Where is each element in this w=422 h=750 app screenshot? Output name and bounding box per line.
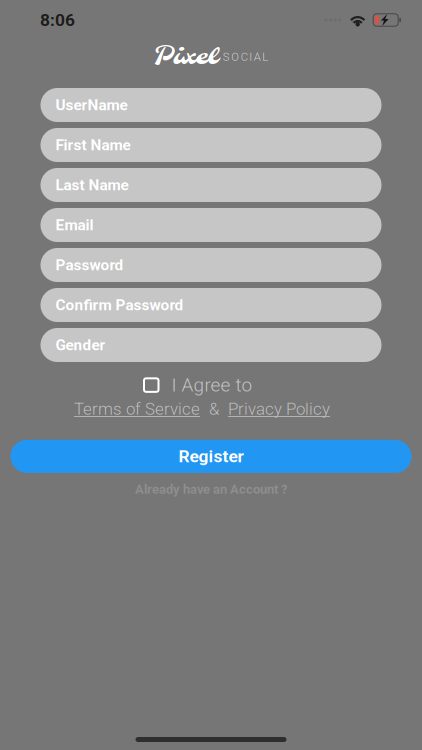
- staticText: Email: [55, 216, 93, 234]
- staticText: 8:06: [40, 10, 75, 30]
- staticText: Pixel: [154, 41, 218, 73]
- staticText: Terms of Service: [74, 399, 200, 419]
- button[interactable]: Already have an Account ?: [135, 482, 287, 497]
- button[interactable]: UserName: [40, 88, 381, 122]
- staticText: &: [209, 399, 219, 419]
- button[interactable]: Last Name: [40, 168, 381, 202]
- staticText: Password: [55, 256, 123, 274]
- button[interactable]: Gender: [40, 328, 381, 362]
- button[interactable]: Terms of Service: [74, 399, 200, 419]
- button[interactable]: Privacy Policy: [228, 399, 330, 419]
- staticText: Gender: [55, 336, 105, 354]
- staticText: First Name: [55, 136, 130, 154]
- button[interactable]: I agree: [144, 378, 158, 392]
- staticText: Confirm Password: [55, 296, 183, 314]
- button[interactable]: Register: [10, 440, 411, 473]
- staticText: Last Name: [55, 176, 128, 194]
- staticText: Register: [178, 446, 243, 466]
- button[interactable]: Confirm Password: [40, 288, 381, 322]
- button[interactable]: Email: [40, 208, 381, 242]
- button[interactable]: Password: [40, 248, 381, 282]
- staticText: SOCIAL: [223, 50, 268, 64]
- staticText: I Agree to: [171, 374, 252, 396]
- staticText: Privacy Policy: [228, 399, 330, 419]
- staticText: Already have an Account ?: [135, 482, 287, 497]
- staticText: UserName: [55, 96, 127, 114]
- button[interactable]: First Name: [40, 128, 381, 162]
